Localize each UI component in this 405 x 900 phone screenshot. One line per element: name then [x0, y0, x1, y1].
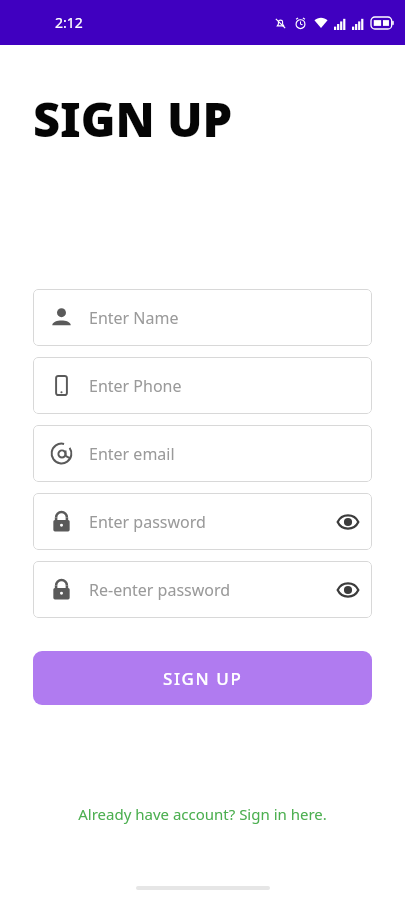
- button[interactable]: Re-enter password: [33, 561, 372, 618]
- staticText: Re-enter password: [89, 579, 324, 601]
- button[interactable]: Show password: [324, 493, 372, 550]
- button[interactable]: Show password: [324, 561, 372, 618]
- staticText: 2:12: [55, 13, 83, 32]
- button[interactable]: Enter Name: [33, 289, 372, 346]
- staticText: Already have account? Sign in here.: [78, 804, 327, 824]
- staticText: Enter password: [89, 511, 324, 533]
- staticText: Enter Phone: [89, 375, 360, 397]
- button[interactable]: Enter Phone: [33, 357, 372, 414]
- button[interactable]: Already have account? Sign in here.: [0, 804, 405, 824]
- staticText: SIGN UP: [33, 87, 233, 151]
- staticText: Enter email: [89, 443, 360, 465]
- button[interactable]: Enter email: [33, 425, 372, 482]
- staticText: SIGN UP: [163, 667, 243, 690]
- button[interactable]: SIGN UP: [33, 651, 372, 705]
- staticText: Enter Name: [89, 307, 360, 329]
- button[interactable]: Enter password: [33, 493, 372, 550]
